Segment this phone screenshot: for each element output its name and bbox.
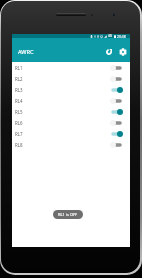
- button[interactable]: RL3: [12, 84, 130, 95]
- staticText: RL4: [15, 98, 23, 104]
- button[interactable]: Refresh: [103, 46, 115, 58]
- staticText: RL3: [15, 87, 23, 93]
- staticText: 20:38: [117, 34, 126, 38]
- staticText: AWRC: [18, 48, 34, 56]
- button[interactable]: RL5: [12, 106, 130, 117]
- staticText: RL1: [15, 65, 23, 71]
- staticText: RL2: [15, 76, 23, 82]
- button[interactable]: RL8: [12, 139, 130, 150]
- staticText: RL8: [15, 142, 23, 148]
- button[interactable]: RL2: [12, 73, 130, 84]
- button[interactable]: RL1: [12, 62, 130, 73]
- staticText: 4G: [108, 34, 113, 38]
- staticText: RL5: [15, 109, 23, 115]
- staticText: RL1 is OFF: [58, 212, 78, 217]
- staticText: RL7: [15, 131, 23, 137]
- button[interactable]: Settings: [117, 46, 129, 58]
- button[interactable]: RL6: [12, 117, 130, 128]
- staticText: RL6: [15, 120, 23, 126]
- button[interactable]: RL7: [12, 128, 130, 139]
- button[interactable]: RL4: [12, 95, 130, 106]
